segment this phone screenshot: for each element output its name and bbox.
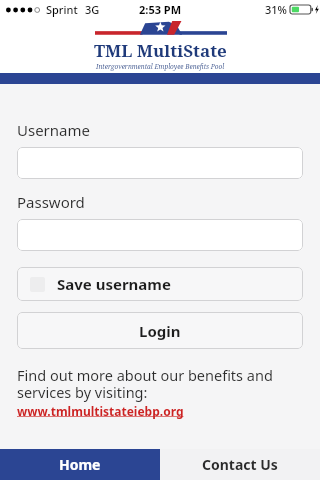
staticText: Home xyxy=(59,455,101,474)
staticText: Save username xyxy=(57,274,171,294)
staticText: Find out more about our benefits and ser… xyxy=(17,365,303,402)
button[interactable]: Save username xyxy=(17,267,303,301)
staticText: 31% xyxy=(265,2,287,17)
button[interactable]: Login xyxy=(17,312,303,349)
staticText: Password xyxy=(17,192,85,212)
staticText: TML MultiState xyxy=(94,39,227,62)
staticText: 3G xyxy=(85,2,100,17)
staticText: Contact Us xyxy=(202,455,278,474)
staticText: Sprint xyxy=(46,2,78,17)
button[interactable] xyxy=(17,147,303,179)
staticText: Intergovernmental Employee Benefits Pool xyxy=(96,62,225,71)
staticText: Login xyxy=(139,321,181,341)
button[interactable]: Contact Us xyxy=(160,449,320,480)
button[interactable]: Home xyxy=(0,449,160,480)
button[interactable]: www.tmlmultistateiebp.org xyxy=(17,403,184,419)
staticText: 2:53 PM xyxy=(139,2,182,17)
staticText: Username xyxy=(17,120,90,140)
button[interactable] xyxy=(17,219,303,251)
